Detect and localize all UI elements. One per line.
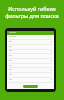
button[interactable]: Применить фильтры bbox=[23, 85, 38, 88]
staticText: Используй гибкие bbox=[0, 5, 64, 12]
staticText: фильтры для поиска bbox=[0, 12, 64, 19]
